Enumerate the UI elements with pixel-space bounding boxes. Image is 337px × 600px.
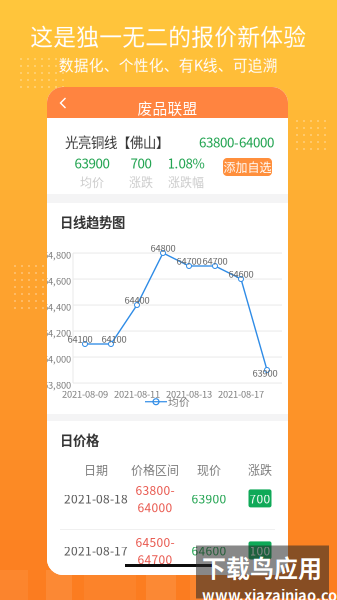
staticText: 废品联盟 bbox=[137, 97, 197, 118]
staticText: 63,800 bbox=[43, 378, 71, 391]
staticText: 64600 bbox=[191, 542, 226, 559]
staticText: 64100 bbox=[101, 332, 126, 345]
staticText: 63900 bbox=[252, 366, 277, 379]
staticText: 价格区间 bbox=[131, 461, 179, 478]
staticText: 涨跌幅 bbox=[168, 173, 204, 191]
staticText: 2021-08-17 bbox=[64, 542, 128, 559]
staticText: www.xiazainiao.com bbox=[202, 584, 337, 600]
staticText: 1.08% bbox=[167, 153, 204, 172]
staticText: 63900 bbox=[191, 490, 226, 507]
staticText: 64800 bbox=[150, 241, 175, 254]
staticText: 2021-08-18 bbox=[64, 490, 128, 507]
staticText: 2021-08-09 bbox=[62, 387, 108, 400]
staticText: 63800-64000 bbox=[199, 132, 274, 151]
staticText: 64,400 bbox=[43, 300, 71, 313]
staticText: 63800- bbox=[135, 481, 174, 498]
staticText: 63900 bbox=[74, 153, 109, 172]
button[interactable]: 添加自选 bbox=[223, 158, 272, 176]
staticText: 64600 bbox=[228, 267, 253, 280]
staticText: 日价格 bbox=[60, 430, 99, 449]
staticText: 添加自选 bbox=[223, 158, 271, 176]
staticText: 64400 bbox=[124, 293, 149, 306]
staticText: 64,200 bbox=[43, 326, 71, 339]
staticText: 日期 bbox=[84, 461, 108, 478]
staticText: 64100 bbox=[67, 332, 92, 345]
staticText: 现价 bbox=[197, 461, 221, 478]
staticText: 700 bbox=[249, 490, 270, 507]
staticText: 64700 bbox=[202, 254, 227, 267]
staticText: 700 bbox=[130, 153, 151, 172]
staticText: 涨跌 bbox=[129, 173, 153, 191]
staticText: 数据化、个性化、有K线、可追溯 bbox=[59, 54, 278, 75]
staticText: 涨跌 bbox=[248, 461, 272, 478]
staticText: 100 bbox=[249, 542, 270, 559]
staticText: 64,000 bbox=[43, 352, 71, 365]
staticText: 64700 bbox=[176, 254, 201, 267]
staticText: 均价 bbox=[168, 394, 190, 409]
staticText: 2021-08-13 bbox=[166, 387, 212, 400]
staticText: 64700 bbox=[137, 550, 172, 568]
staticText: 64,800 bbox=[43, 248, 71, 261]
staticText: 均价 bbox=[80, 173, 104, 191]
staticText: 64,600 bbox=[43, 274, 71, 287]
staticText: 下载鸟应用 bbox=[202, 549, 322, 584]
staticText: 64500- bbox=[135, 533, 174, 550]
staticText: 光亮铜线【佛山】 bbox=[65, 132, 169, 151]
staticText: 2021-08-11 bbox=[114, 387, 160, 400]
staticText: 64000 bbox=[137, 498, 172, 516]
staticText: 这是独一无二的报价新体验 bbox=[30, 19, 306, 52]
staticText: 2021-08-17 bbox=[218, 387, 264, 400]
staticText: 日线趋势图 bbox=[60, 212, 125, 231]
button[interactable]: Back bbox=[50, 90, 76, 116]
